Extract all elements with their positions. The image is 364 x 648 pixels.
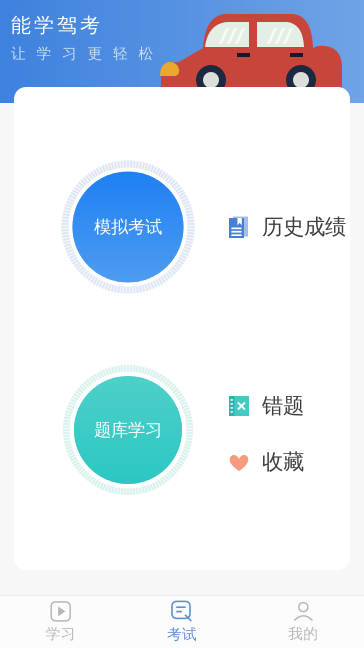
staticText: 我的: [288, 625, 318, 643]
staticText: 历史成绩: [262, 214, 346, 240]
button[interactable]: 历史成绩: [229, 207, 349, 247]
button[interactable]: 我的: [243, 596, 364, 648]
staticText: 让学习更轻松: [11, 45, 153, 63]
button[interactable]: 题库学习: [63, 365, 193, 495]
button[interactable]: 考试: [121, 596, 243, 648]
staticText: 题库学习: [94, 419, 162, 441]
staticText: 收藏: [262, 449, 304, 475]
staticText: 考试: [167, 625, 197, 643]
button[interactable]: 错题: [229, 389, 319, 423]
staticText: 错题: [262, 393, 304, 419]
staticText: 能学驾考: [11, 13, 100, 38]
staticText: 学习: [46, 625, 76, 643]
button[interactable]: 学习: [0, 596, 121, 648]
button[interactable]: 模拟考试: [62, 161, 194, 293]
staticText: 模拟考试: [94, 216, 162, 238]
button[interactable]: 收藏: [229, 445, 319, 479]
